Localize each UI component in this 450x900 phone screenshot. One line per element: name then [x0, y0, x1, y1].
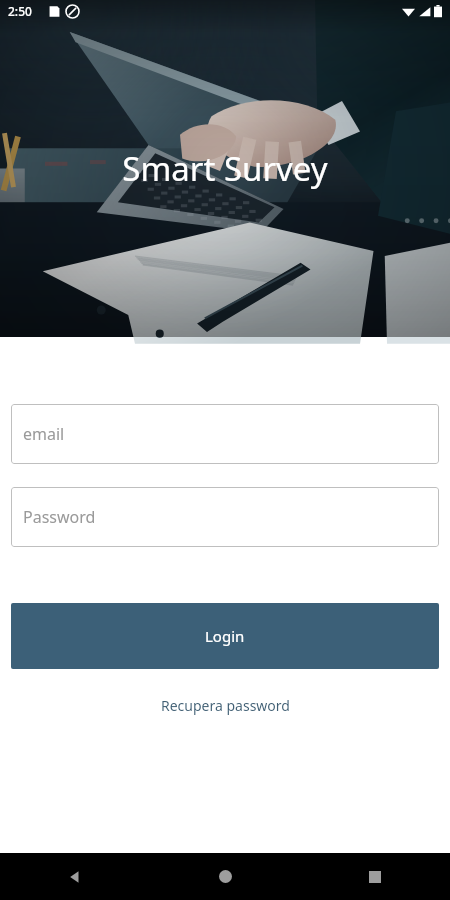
- staticText: Smart Survey: [122, 146, 328, 191]
- button[interactable]: email: [11, 404, 439, 464]
- button[interactable]: Recent apps: [300, 853, 450, 900]
- button[interactable]: Recupera password: [0, 689, 450, 721]
- staticText: Password: [23, 506, 96, 528]
- staticText: Login: [205, 626, 245, 646]
- button[interactable]: Home: [150, 853, 300, 900]
- button[interactable]: Password: [11, 487, 439, 547]
- staticText: Recupera password: [161, 696, 290, 715]
- button[interactable]: Back: [0, 853, 150, 900]
- staticText: 2:50: [8, 3, 32, 19]
- staticText: email: [23, 423, 65, 445]
- button[interactable]: Login: [11, 603, 439, 669]
